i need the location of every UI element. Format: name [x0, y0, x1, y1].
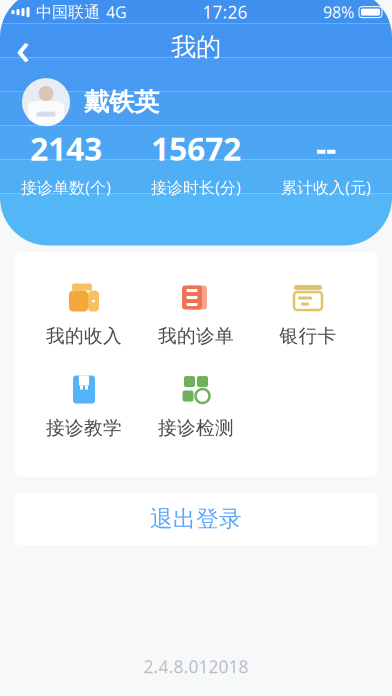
staticText: 退出登录 — [150, 505, 242, 533]
staticText: 4G — [106, 1, 127, 23]
button[interactable]: Back — [0, 25, 46, 69]
staticText: 接诊检测 — [158, 416, 234, 439]
staticText: 接诊时长(分) — [151, 177, 241, 198]
button[interactable]: 退出登录 — [14, 493, 378, 545]
staticText: 中国联通 — [36, 2, 100, 22]
staticText: 银行卡 — [279, 324, 336, 347]
staticText: 接诊教学 — [46, 416, 122, 439]
staticText: 2.4.8.012018 — [143, 655, 248, 678]
staticText: ‹ — [15, 17, 30, 77]
button[interactable]: 银行卡 — [252, 280, 364, 350]
button[interactable]: 接诊检测 — [140, 372, 252, 442]
staticText: 17:26 — [202, 1, 247, 24]
button[interactable]: 我的收入 — [28, 280, 140, 350]
staticText: 15672 — [151, 127, 241, 170]
button[interactable]: 接诊教学 — [28, 372, 140, 442]
button[interactable]: 我的诊单 — [140, 280, 252, 350]
staticText: 戴铁英 — [84, 87, 159, 118]
staticText: 2143 — [30, 127, 102, 170]
staticText: 我的收入 — [46, 324, 122, 347]
staticText: 累计收入(元) — [281, 177, 371, 198]
staticText: 98% — [323, 1, 354, 23]
staticText: -- — [316, 127, 336, 170]
staticText: 我的诊单 — [158, 324, 234, 347]
staticText: 接诊单数(个) — [21, 177, 111, 198]
staticText: 我的 — [171, 32, 221, 63]
